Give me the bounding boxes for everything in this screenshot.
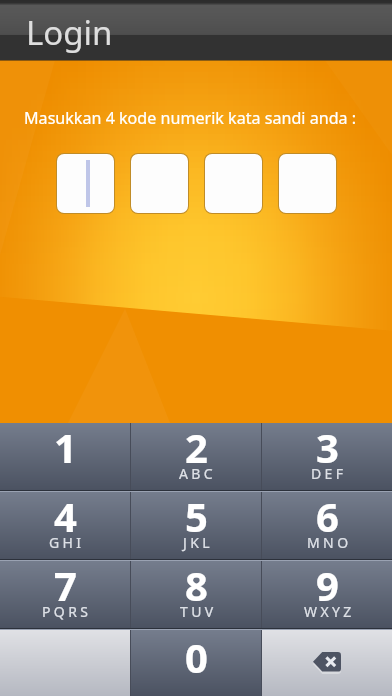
staticText: 5 (185, 489, 208, 543)
staticText: JKL (183, 533, 214, 552)
staticText: GHI (49, 533, 85, 552)
staticText: 1 (54, 420, 77, 474)
staticText: 2 (185, 420, 208, 474)
staticText: MNO (307, 533, 352, 552)
staticText: ABC (179, 464, 217, 483)
button[interactable]: 0 (131, 630, 261, 696)
staticText: TUV (180, 602, 217, 621)
button[interactable]: 8 (131, 561, 261, 628)
staticText: Login (26, 10, 113, 55)
button[interactable]: Delete (262, 630, 392, 696)
staticText: PQRS (42, 602, 92, 621)
button[interactable] (205, 154, 262, 213)
staticText: 4 (54, 489, 77, 543)
staticText: 0 (185, 630, 208, 684)
button[interactable]: 7 (0, 561, 130, 628)
staticText: 6 (316, 489, 339, 543)
button[interactable]: 5 (131, 492, 261, 559)
staticText: DEF (311, 464, 347, 483)
staticText: 3 (316, 420, 339, 474)
button[interactable] (57, 154, 114, 213)
button[interactable]: 3 (262, 423, 392, 490)
button[interactable] (0, 630, 130, 696)
button[interactable]: 1 (0, 423, 130, 490)
button[interactable] (131, 154, 188, 213)
staticText: 8 (185, 558, 208, 612)
button[interactable] (279, 154, 336, 213)
staticText: Masukkan 4 kode numerik kata sandi anda … (24, 107, 357, 129)
staticText: 9 (316, 558, 339, 612)
staticText: 7 (54, 558, 77, 612)
button[interactable]: 9 (262, 561, 392, 628)
button[interactable]: 4 (0, 492, 130, 559)
button[interactable]: 6 (262, 492, 392, 559)
button[interactable]: 2 (131, 423, 261, 490)
staticText: WXYZ (304, 602, 355, 621)
